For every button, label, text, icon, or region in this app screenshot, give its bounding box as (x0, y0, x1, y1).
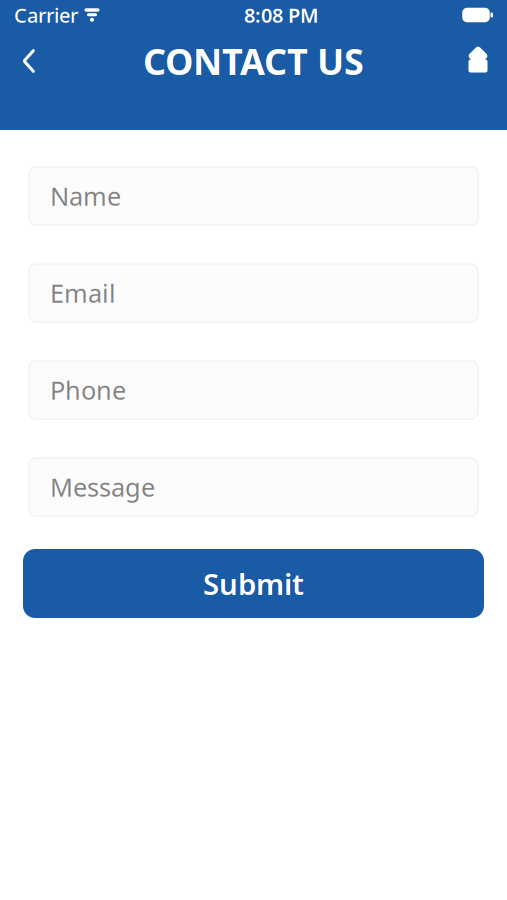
button[interactable]: Name (4, 167, 503, 225)
staticText: Email (50, 276, 116, 310)
staticText: Phone (50, 373, 126, 407)
button[interactable]: Message (4, 458, 503, 516)
staticText: Submit (203, 564, 304, 603)
staticText: Message (50, 470, 155, 504)
staticText: Carrier (14, 2, 78, 28)
staticText: CONTACT US (143, 37, 364, 85)
staticText: 8:08 PM (244, 2, 319, 28)
button[interactable]: Submit (4, 549, 503, 618)
button[interactable]: Email (4, 264, 503, 322)
staticText: Name (50, 179, 121, 213)
button[interactable]: Home (451, 34, 505, 88)
button[interactable]: Back (2, 34, 56, 88)
button[interactable]: Phone (4, 361, 503, 419)
